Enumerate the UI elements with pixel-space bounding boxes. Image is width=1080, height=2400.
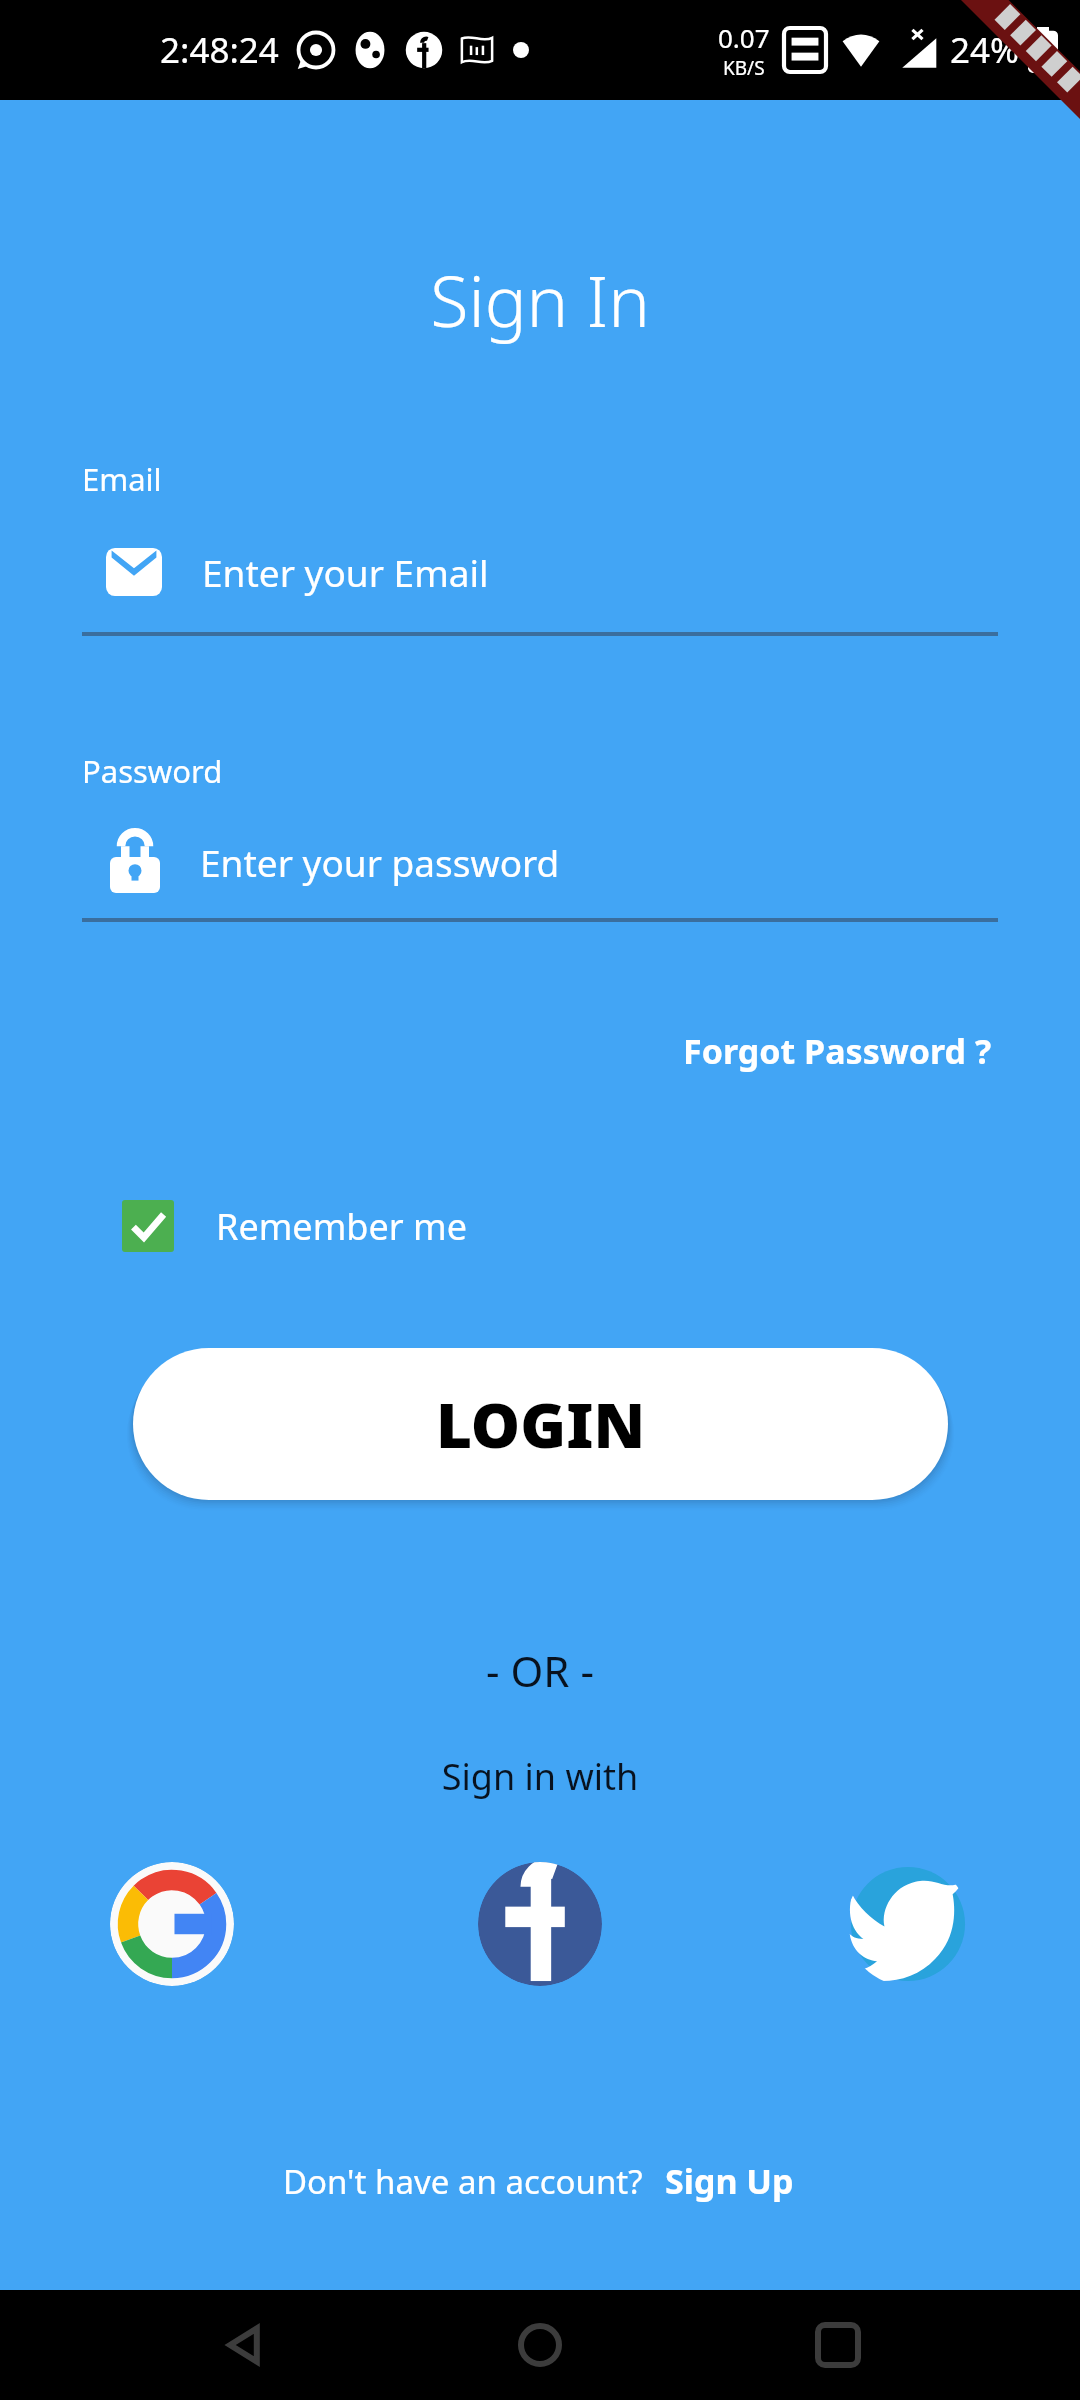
button[interactable]: Recent apps (783, 2290, 893, 2400)
staticText: KB/S (723, 55, 765, 81)
staticText: LOGIN (436, 1382, 646, 1466)
staticText: Password (82, 750, 223, 792)
button[interactable]: Back (188, 2290, 298, 2400)
button[interactable]: Home (485, 2290, 595, 2400)
staticText: 24% (950, 26, 1020, 74)
staticText: 0.07 (718, 20, 770, 55)
button[interactable]: Sign in with Facebook (478, 1862, 602, 1986)
staticText: Enter your Email (202, 547, 489, 597)
button[interactable]: Forgot Password ? (677, 1020, 998, 1082)
button[interactable]: Sign Up (661, 2152, 798, 2210)
staticText: Sign in with (0, 1752, 1080, 1801)
staticText: 2:48:24 (160, 26, 279, 74)
staticText: - OR - (0, 1642, 1080, 1699)
staticText: Sign In (0, 252, 1080, 347)
staticText: Email (82, 458, 162, 500)
staticText: Don't have an account? (283, 2159, 643, 2204)
button[interactable]: Enter your Email (82, 530, 998, 614)
staticText: Remember me (216, 1202, 467, 1251)
button[interactable]: Enter your password (82, 820, 998, 904)
staticText: Enter your password (200, 837, 560, 887)
button[interactable]: Sign in with Twitter (846, 1862, 970, 1986)
button[interactable]: Remember me (122, 1200, 467, 1252)
button[interactable]: Sign in with Google (110, 1862, 234, 1986)
button[interactable]: LOGIN (133, 1348, 948, 1500)
